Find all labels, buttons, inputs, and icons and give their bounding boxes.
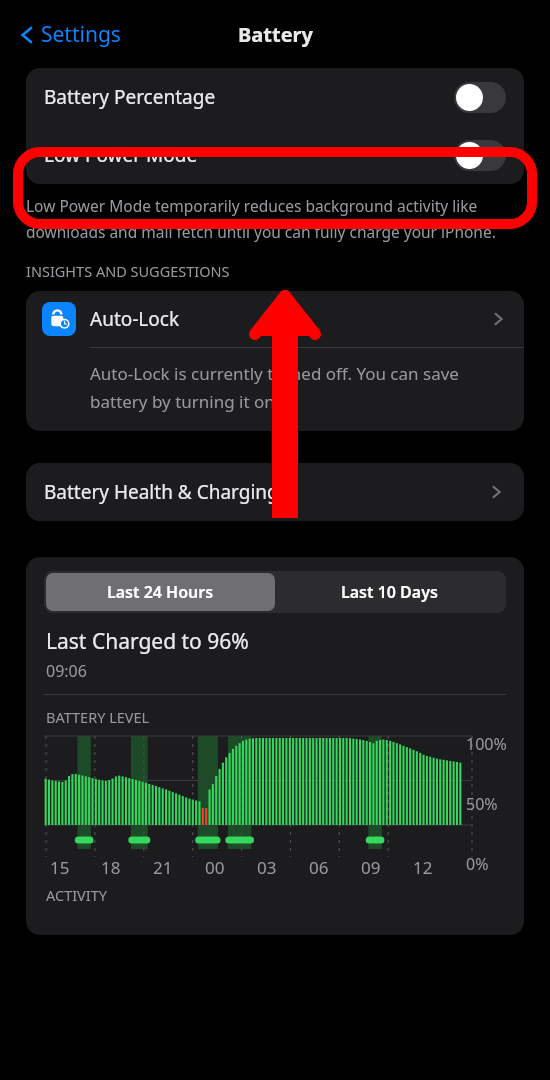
staticText: 09 (361, 856, 381, 879)
staticText: 12 (413, 856, 433, 879)
staticText: Last 10 Days (341, 581, 438, 603)
button[interactable]: Last 24 Hours (46, 573, 275, 611)
staticText: 06 (309, 856, 329, 879)
staticText: 18 (101, 856, 121, 879)
staticText: ACTIVITY (46, 885, 108, 905)
staticText: 0% (466, 853, 489, 875)
staticText: Last Charged to 96% (46, 627, 249, 656)
button[interactable]: Battery Percentage (26, 68, 524, 126)
staticText: 03 (257, 856, 277, 879)
staticText: Settings (41, 20, 121, 49)
staticText: Auto-Lock (90, 306, 488, 332)
staticText: 50% (466, 793, 498, 815)
staticText: Battery (238, 21, 313, 48)
staticText: 00 (205, 856, 225, 879)
staticText: Battery Percentage (44, 84, 454, 110)
staticText: INSIGHTS AND SUGGESTIONS (26, 261, 230, 281)
button[interactable]: Toggle off (454, 82, 506, 113)
button[interactable]: Settings (12, 16, 125, 53)
staticText: Auto-Lock is currently turned off. You c… (90, 362, 502, 413)
staticText: 15 (50, 856, 70, 879)
staticText: Low Power Mode temporarily reduces backg… (26, 195, 524, 243)
staticText: 100% (466, 733, 507, 755)
staticText: Low Power Mode (44, 142, 454, 168)
staticText: Battery Health & Charging (44, 479, 486, 505)
button[interactable]: Last 10 Days (275, 573, 504, 611)
button[interactable]: Auto-Lock (26, 291, 524, 347)
staticText: 21 (153, 856, 173, 879)
staticText: BATTERY LEVEL (46, 707, 150, 727)
button[interactable]: Low Power Mode (26, 126, 524, 184)
staticText: Last 24 Hours (107, 581, 214, 603)
button[interactable]: Toggle off (454, 140, 506, 171)
staticText: 09:06 (46, 660, 87, 682)
button[interactable]: Battery Health & Charging (26, 463, 524, 521)
